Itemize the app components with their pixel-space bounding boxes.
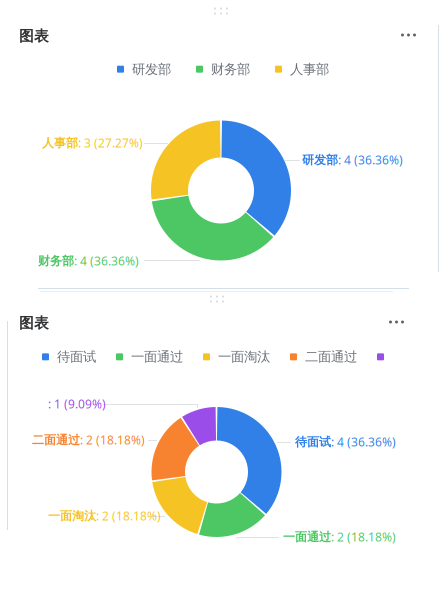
staticText: 一面淘汰 [218,349,270,365]
staticText: 待面试 [57,349,96,365]
staticText: 一面淘汰 [48,509,96,523]
staticText: 图表 [19,27,49,45]
staticText: 财务部 [38,254,74,268]
button[interactable]: More options [393,24,424,46]
button[interactable]: More options [381,311,412,333]
staticText: 财务部 [211,61,250,77]
staticText: 研发部 [132,61,171,77]
staticText: : 1 (9.09%) [48,396,106,412]
staticText: : 2 (18.18%) [331,529,396,545]
staticText: 图表 [19,314,49,332]
staticText: 研发部 [302,153,338,167]
staticText: : 2 (18.18%) [96,508,161,524]
staticText: : 2 (18.18%) [80,432,145,448]
staticText: 二面通过 [305,349,357,365]
staticText: 二面通过 [32,433,80,447]
staticText: : 4 (36.36%) [338,152,403,168]
staticText: : 3 (27.27%) [78,135,143,151]
staticText: 一面通过 [131,349,183,365]
staticText: : 4 (36.36%) [331,434,396,450]
staticText: 一面通过 [283,530,331,544]
staticText: : 4 (36.36%) [74,253,139,269]
staticText: 人事部 [42,136,78,150]
staticText: 待面试 [295,435,331,449]
staticText: 人事部 [290,61,329,77]
